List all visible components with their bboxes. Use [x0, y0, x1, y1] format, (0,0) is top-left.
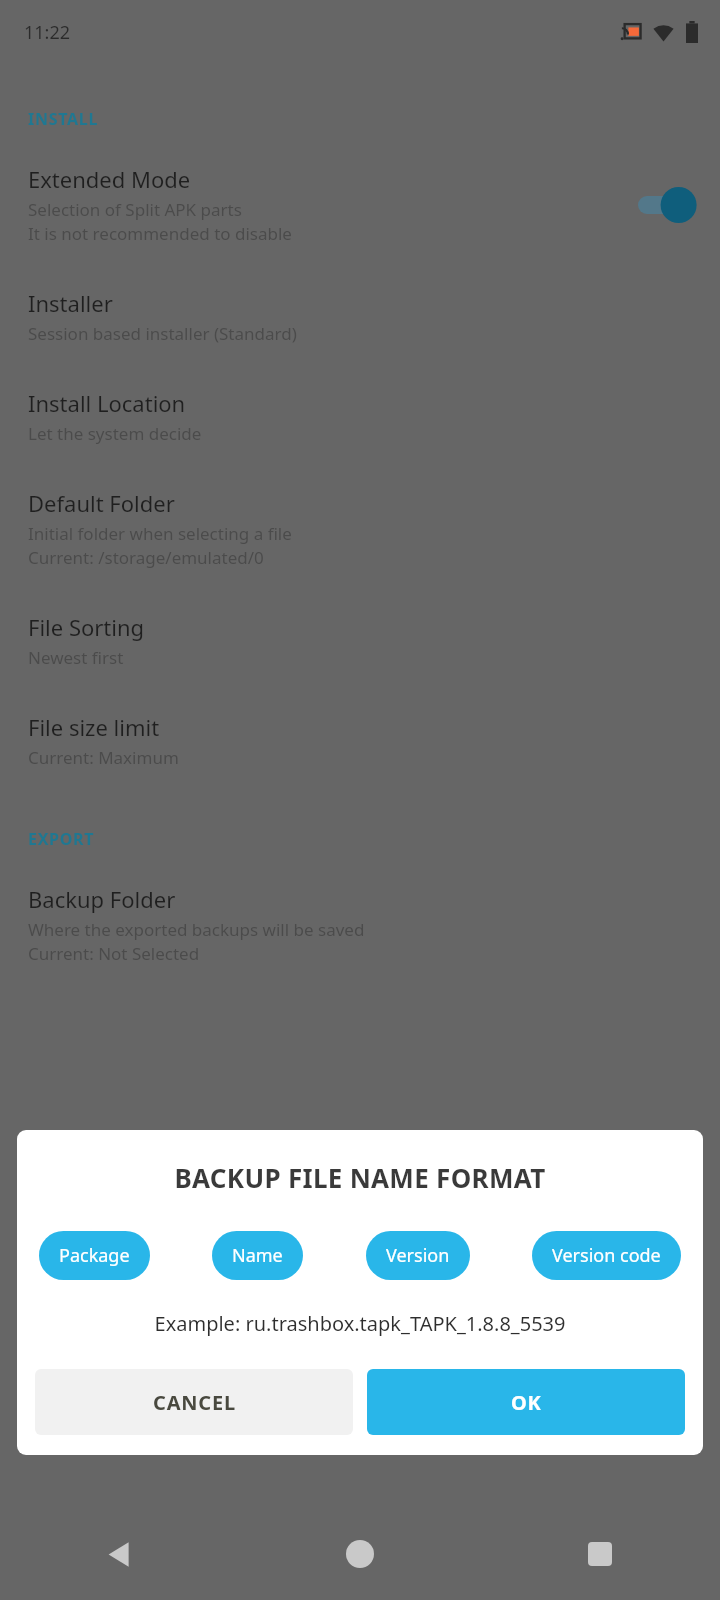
staticText: Install Location: [28, 388, 186, 418]
staticText: File Sorting: [28, 612, 145, 642]
staticText: Where the exported backups will be saved: [28, 918, 365, 941]
button[interactable]: File Sorting: [0, 606, 720, 676]
staticText: Version code: [552, 1243, 661, 1268]
staticText: Newest first: [28, 646, 124, 669]
button[interactable]: Package: [39, 1231, 150, 1280]
staticText: Installer: [28, 288, 113, 318]
button[interactable]: Home: [240, 1508, 480, 1600]
button[interactable]: CANCEL: [35, 1369, 353, 1435]
button[interactable]: Version code: [532, 1231, 681, 1280]
button[interactable]: Back: [0, 1508, 240, 1600]
button[interactable]: Extended Mode: [0, 158, 720, 252]
button[interactable]: Recents: [480, 1508, 720, 1600]
staticText: Package: [59, 1243, 130, 1268]
button[interactable]: Installer: [0, 282, 720, 352]
staticText: Let the system decide: [28, 422, 202, 445]
staticText: OK: [511, 1389, 542, 1416]
staticText: Current: /storage/emulated/0: [28, 546, 264, 569]
button[interactable]: OK: [367, 1369, 685, 1435]
staticText: 11:22: [24, 20, 71, 45]
staticText: EXPORT: [28, 828, 95, 850]
staticText: Example: ru.trashbox.tapk_TAPK_1.8.8_553…: [17, 1310, 703, 1337]
staticText: Extended Mode: [28, 164, 191, 194]
staticText: Version: [386, 1243, 450, 1268]
staticText: Session based installer (Standard): [28, 322, 297, 345]
button[interactable]: Version: [366, 1231, 470, 1280]
staticText: Backup Folder: [28, 884, 176, 914]
staticText: Name: [232, 1243, 283, 1268]
staticText: Selection of Split APK parts: [28, 198, 242, 221]
staticText: INSTALL: [28, 108, 99, 130]
button[interactable]: Extended Mode toggle: [638, 187, 696, 223]
staticText: Default Folder: [28, 488, 175, 518]
staticText: It is not recommended to disable: [28, 222, 292, 245]
staticText: Current: Not Selected: [28, 942, 200, 965]
staticText: File size limit: [28, 712, 160, 742]
button[interactable]: Default Folder: [0, 482, 720, 576]
staticText: CANCEL: [153, 1389, 236, 1416]
button[interactable]: Name: [212, 1231, 303, 1280]
button[interactable]: Backup Folder: [0, 878, 720, 972]
staticText: BACKUP FILE NAME FORMAT: [17, 1160, 703, 1195]
staticText: Current: Maximum: [28, 746, 179, 769]
button[interactable]: File size limit: [0, 706, 720, 776]
staticText: Initial folder when selecting a file: [28, 522, 292, 545]
button[interactable]: Install Location: [0, 382, 720, 452]
